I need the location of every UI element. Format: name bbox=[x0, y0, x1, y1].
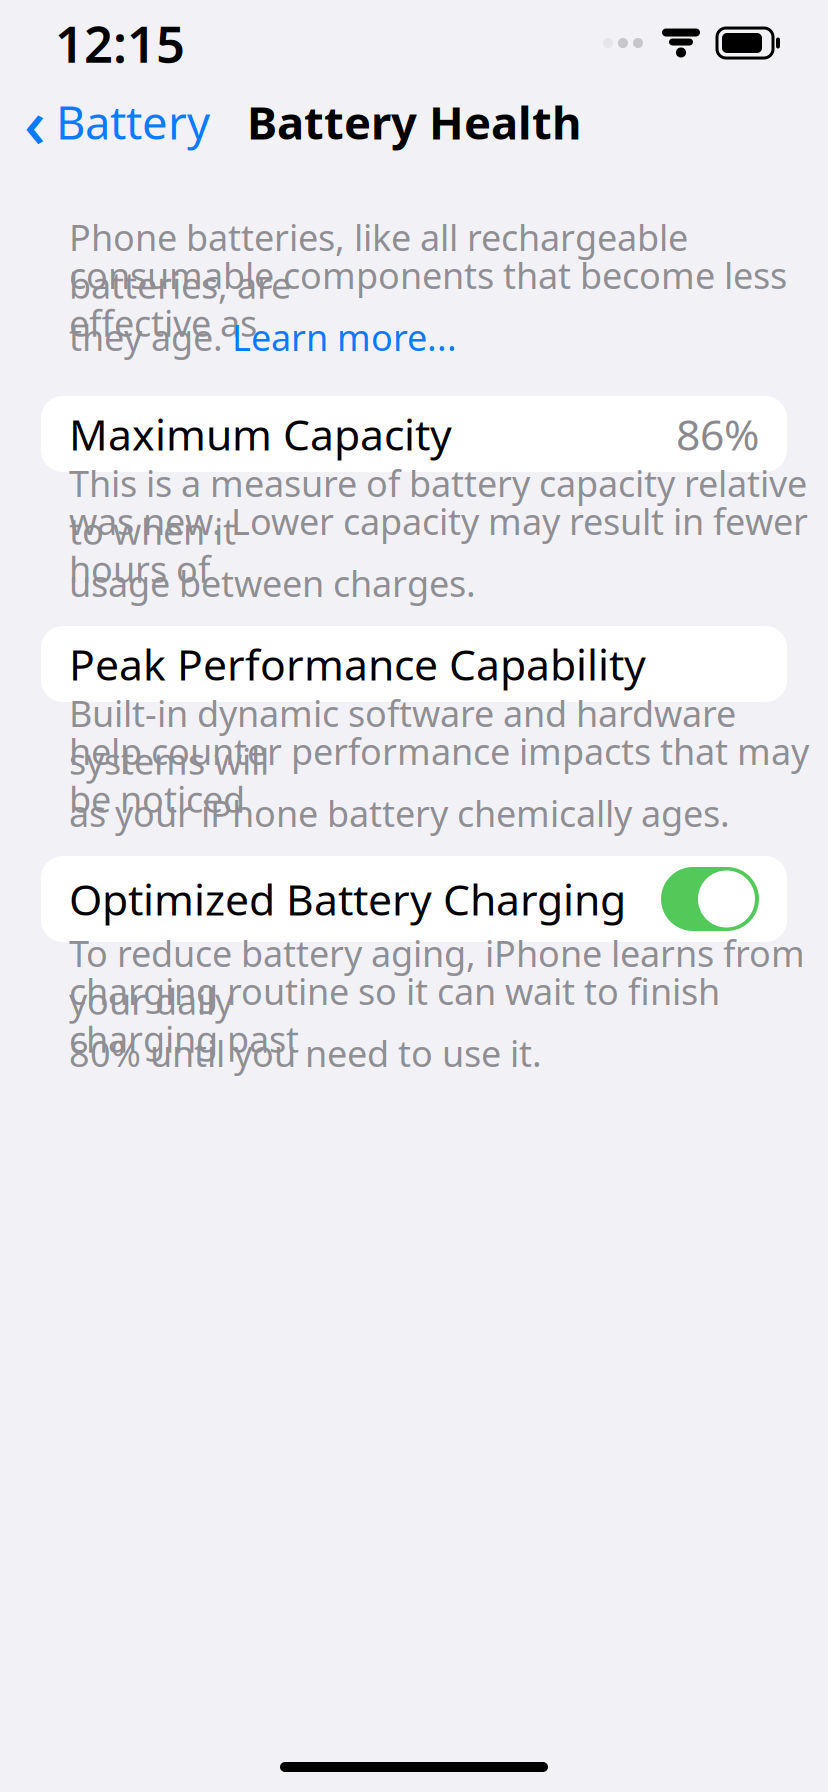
staticText: was new. Lower capacity may result in fe… bbox=[69, 497, 808, 593]
staticText: charging routine so it can wait to finis… bbox=[69, 967, 720, 1063]
staticText: usage between charges. bbox=[69, 559, 476, 607]
staticText: help counter performance impacts that ma… bbox=[69, 727, 809, 823]
staticText: Maximum Capacity bbox=[69, 406, 452, 462]
button[interactable]: Optimized Battery Charging bbox=[41, 856, 787, 942]
staticText: 12:15 bbox=[55, 9, 185, 77]
staticText: To reduce battery aging, iPhone learns f… bbox=[69, 929, 805, 1025]
staticText: Battery Health bbox=[247, 92, 581, 152]
staticText: Phone batteries, like all rechargeable b… bbox=[69, 213, 688, 309]
staticText: Peak Performance Capability bbox=[69, 636, 646, 692]
staticText: 80% until you need to use it. bbox=[69, 1029, 542, 1077]
staticText: as your iPhone battery chemically ages. bbox=[69, 789, 730, 837]
button[interactable]: Learn more... bbox=[232, 313, 457, 361]
staticText: 86% bbox=[676, 406, 759, 462]
staticText: consumable components that become less e… bbox=[69, 251, 787, 347]
staticText: Built-in dynamic software and hardware s… bbox=[69, 689, 736, 785]
staticText: Battery bbox=[56, 92, 210, 152]
staticText: Learn more... bbox=[232, 313, 457, 361]
staticText: This is a measure of battery capacity re… bbox=[69, 459, 807, 555]
staticText: they age. bbox=[69, 313, 232, 361]
button[interactable]: Peak Performance Capability bbox=[41, 626, 787, 702]
button[interactable]: ‹ bbox=[14, 70, 220, 174]
staticText: Optimized Battery Charging bbox=[69, 871, 626, 927]
staticText: ‹ bbox=[24, 78, 46, 166]
button[interactable]: Maximum Capacity bbox=[41, 396, 787, 472]
